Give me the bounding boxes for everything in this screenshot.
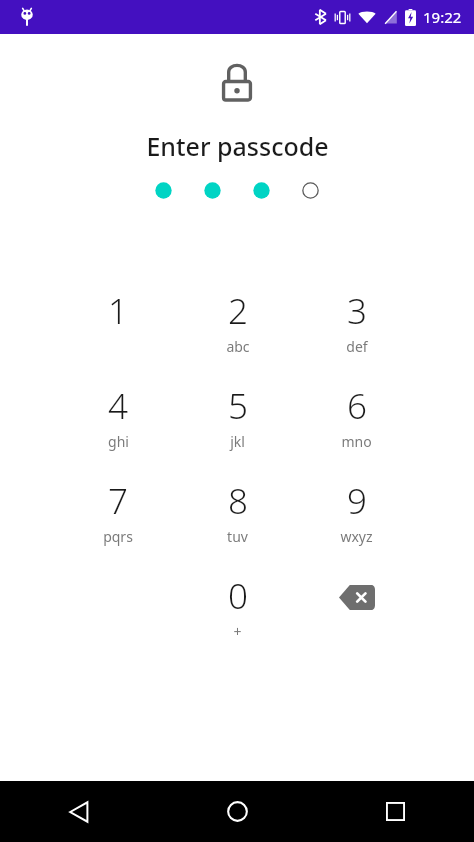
staticText: 2 (228, 287, 248, 335)
staticText: + (233, 622, 242, 641)
button[interactable]: 9 (297, 471, 416, 566)
staticText: ghi (108, 432, 129, 451)
button[interactable]: 4 (58, 376, 178, 471)
staticText: 19:22 (423, 7, 462, 27)
button[interactable]: 7 (58, 471, 178, 566)
staticText: abc (226, 337, 250, 356)
staticText: 5 (228, 382, 248, 430)
button[interactable]: Recents (316, 781, 474, 842)
staticText: mno (341, 432, 372, 451)
staticText: 9 (347, 477, 367, 525)
button[interactable]: 8 (178, 471, 297, 566)
button[interactable]: 3 (297, 281, 416, 376)
staticText: 3 (347, 287, 367, 335)
staticText: def (346, 337, 368, 356)
button[interactable]: 1 (58, 281, 178, 376)
staticText: 4 (108, 382, 128, 430)
button[interactable]: 5 (178, 376, 297, 471)
button[interactable]: Back (0, 781, 158, 842)
staticText: pqrs (103, 527, 133, 546)
staticText: 1 (108, 287, 128, 335)
button[interactable]: Home (158, 781, 316, 842)
button[interactable]: 0 (178, 566, 297, 661)
staticText: wxyz (340, 527, 373, 546)
button[interactable]: 2 (178, 281, 297, 376)
staticText: tuv (227, 527, 248, 546)
staticText: 7 (108, 477, 128, 525)
staticText: 6 (347, 382, 367, 430)
button[interactable]: 6 (297, 376, 416, 471)
staticText: Enter passcode (146, 129, 329, 163)
button[interactable]: Backspace (297, 566, 416, 661)
staticText: 0 (228, 572, 248, 620)
staticText: jkl (230, 432, 245, 451)
staticText: 8 (228, 477, 248, 525)
